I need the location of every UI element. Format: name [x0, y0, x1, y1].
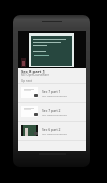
staticText: MIT OpenCourseWare — [21, 73, 49, 77]
staticText: MIT OpenCourseWare — [42, 94, 67, 97]
button[interactable]: Sec 6 part 2 — [18, 121, 86, 140]
button[interactable]: Video player — [18, 31, 86, 68]
staticText: MIT OpenCourseWare — [42, 132, 67, 135]
button[interactable]: Sec 7 part 1 — [18, 83, 86, 102]
staticText: MIT OpenCourseWare — [42, 113, 67, 116]
staticText: Up next — [21, 79, 32, 83]
button[interactable]: Sec 7 part 2 — [18, 102, 86, 121]
staticText: Sec 6 part 2 — [42, 127, 61, 132]
staticText: Sec 7 part 2 — [42, 108, 61, 113]
staticText: Sec 7 part 1 — [42, 89, 61, 94]
staticText: Sec 8 part 1 — [21, 69, 45, 75]
button[interactable]: Sec 8 part 1 — [18, 68, 86, 83]
